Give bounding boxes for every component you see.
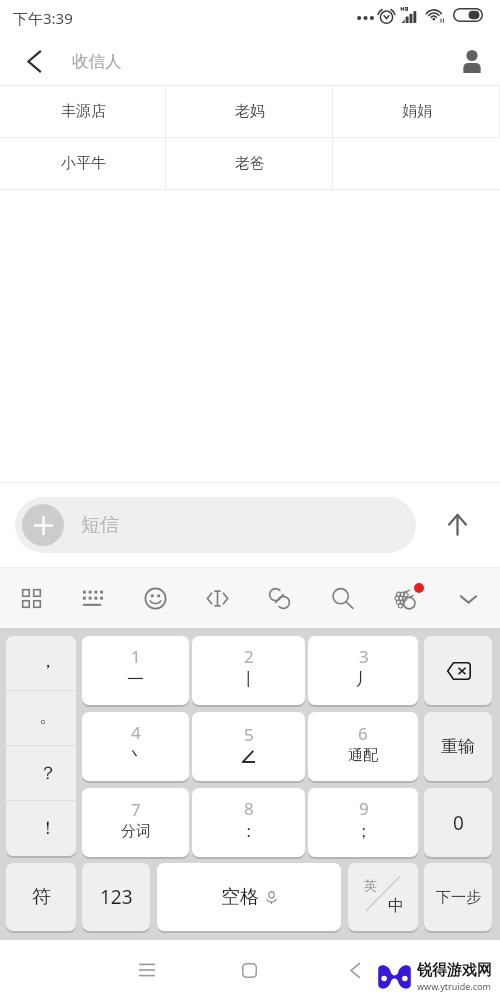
staticText: 下午3:39 <box>13 8 73 28</box>
staticText: 一 <box>127 669 144 690</box>
button[interactable]: ， <box>6 636 76 691</box>
button[interactable]: Contacts <box>447 36 497 86</box>
staticText: ？ <box>39 762 57 785</box>
staticText: ！ <box>39 817 57 840</box>
button[interactable]: 下一步 <box>424 863 492 931</box>
button[interactable]: 8 <box>192 788 305 857</box>
button[interactable]: Send <box>419 482 495 568</box>
button[interactable]: 符 <box>6 863 76 931</box>
staticText: 老妈 <box>235 102 265 121</box>
button[interactable]: Stickers <box>374 568 437 628</box>
staticText: 小平牛 <box>61 154 106 173</box>
staticText: 。 <box>39 705 57 728</box>
button[interactable]: 7 <box>82 788 189 857</box>
staticText: 5 <box>244 723 254 746</box>
button[interactable]: 6 <box>308 712 418 781</box>
staticText: 娟娟 <box>402 102 432 121</box>
button[interactable]: ？ <box>6 746 76 801</box>
button[interactable]: Recents <box>117 940 177 1000</box>
staticText: 下一步 <box>436 888 481 907</box>
button[interactable]: 。 <box>6 691 76 746</box>
button[interactable]: Text input <box>186 568 248 628</box>
staticText: 4 <box>131 721 141 744</box>
staticText: 6 <box>358 722 368 745</box>
staticText: www.ytruide.com <box>417 980 491 992</box>
staticText: 3 <box>359 645 369 668</box>
button[interactable]: 丰源店 <box>0 86 166 137</box>
staticText: 1 <box>131 645 141 668</box>
staticText: 123 <box>100 884 133 910</box>
staticText: 收信人 <box>72 51 122 72</box>
button[interactable]: 123 <box>82 863 150 931</box>
button[interactable]: Back <box>10 37 58 85</box>
button[interactable]: 空格 <box>157 863 341 931</box>
staticText: 短信 <box>81 513 119 537</box>
button[interactable]: 小平牛 <box>0 138 166 189</box>
staticText: 中 <box>388 896 404 916</box>
button[interactable]: 9 <box>308 788 418 857</box>
staticText: ： <box>240 821 257 842</box>
button[interactable]: Attach <box>248 568 311 628</box>
button[interactable]: 短信 <box>15 497 416 553</box>
staticText: 丨 <box>240 669 257 690</box>
staticText: 分词 <box>121 822 151 841</box>
button[interactable]: 4 <box>82 712 189 781</box>
staticText: 丰源店 <box>61 102 106 121</box>
staticText: 2 <box>244 645 254 668</box>
button[interactable]: 英 <box>348 863 418 931</box>
staticText: 8 <box>244 797 254 820</box>
staticText: 老爸 <box>235 154 265 173</box>
button[interactable]: Emoji <box>124 568 186 628</box>
staticText: 7 <box>131 798 141 821</box>
button[interactable]: 老爸 <box>166 138 333 189</box>
staticText: 丶 <box>127 745 144 766</box>
staticText: 空格 <box>221 885 259 909</box>
button[interactable]: 5 <box>192 712 305 781</box>
staticText: 丿 <box>355 669 372 690</box>
staticText: 通配 <box>348 746 378 765</box>
staticText: ， <box>39 650 57 673</box>
button[interactable] <box>424 636 492 705</box>
staticText: 0 <box>453 810 464 836</box>
button[interactable]: Apps <box>0 568 62 628</box>
button[interactable]: Collapse keyboard <box>437 568 500 628</box>
button[interactable]: ！ <box>6 801 76 856</box>
button[interactable]: 3 <box>308 636 418 705</box>
button[interactable]: 娟娟 <box>333 86 500 137</box>
staticText: ； <box>355 821 372 842</box>
button[interactable]: 老妈 <box>166 86 333 137</box>
staticText: 重输 <box>441 736 475 757</box>
button[interactable]: Keyboard <box>62 568 124 628</box>
staticText: 锐得游戏网 <box>417 961 492 980</box>
button[interactable]: 重输 <box>424 712 492 781</box>
staticText: 9 <box>359 797 369 820</box>
button[interactable]: 2 <box>192 636 305 705</box>
button[interactable]: Back <box>325 940 385 1000</box>
button[interactable]: 1 <box>82 636 189 705</box>
button[interactable]: 0 <box>424 788 492 857</box>
button[interactable]: Search <box>311 568 374 628</box>
button[interactable]: Home <box>219 940 279 1000</box>
staticText: 英 <box>364 877 377 893</box>
staticText: 符 <box>32 885 51 909</box>
